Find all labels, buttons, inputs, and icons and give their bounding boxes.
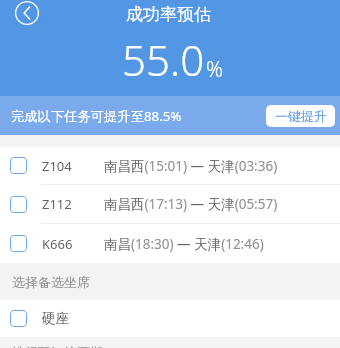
staticText: 南昌西(15:01) — 天津(03:36) bbox=[104, 157, 278, 175]
button[interactable]: 一键提升 bbox=[266, 105, 335, 127]
button[interactable]: Z104 bbox=[0, 147, 340, 185]
button[interactable]: Back bbox=[15, 1, 39, 25]
staticText: 选择预订抢票期 bbox=[12, 344, 103, 348]
staticText: 完成以下任务可提升至88.5% bbox=[11, 107, 182, 125]
button[interactable]: K666 bbox=[0, 224, 340, 263]
button[interactable]: 硬座 bbox=[0, 300, 340, 337]
staticText: 选择备选坐席 bbox=[12, 274, 90, 290]
staticText: 55.0 bbox=[122, 31, 205, 88]
staticText: 一键提升 bbox=[275, 108, 327, 124]
staticText: Z112 bbox=[42, 195, 72, 213]
staticText: 南昌西(17:13) — 天津(05:57) bbox=[104, 195, 278, 213]
staticText: Z104 bbox=[42, 157, 72, 175]
staticText: 南昌(18:30) — 天津(12:46) bbox=[104, 235, 264, 253]
button[interactable]: Z112 bbox=[0, 185, 340, 224]
staticText: 成功率预估 bbox=[126, 4, 211, 25]
staticText: % bbox=[206, 55, 224, 84]
staticText: 硬座 bbox=[42, 310, 69, 327]
staticText: K666 bbox=[42, 235, 73, 253]
